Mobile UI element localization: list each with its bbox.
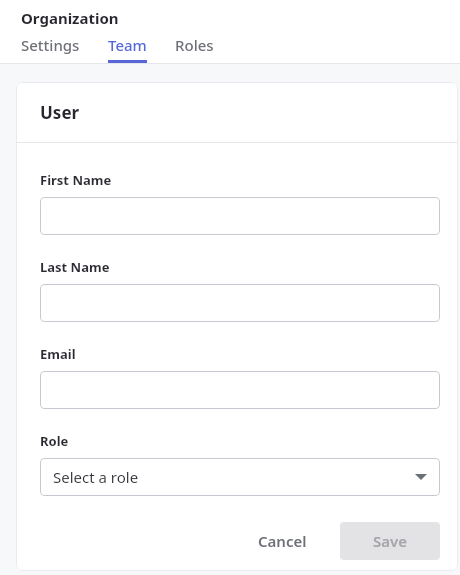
button[interactable]: Settings [21, 35, 80, 63]
button[interactable]: Cancel [250, 523, 315, 559]
button[interactable] [40, 371, 440, 409]
staticText: Save [373, 531, 408, 551]
staticText: Email [40, 345, 76, 363]
staticText: Team [108, 35, 147, 55]
staticText: Settings [21, 35, 80, 55]
staticText: Role [40, 432, 69, 450]
button[interactable]: Roles [175, 35, 214, 63]
staticText: User [40, 101, 80, 124]
button[interactable] [40, 197, 440, 235]
staticText: Select a role [53, 467, 139, 487]
button[interactable]: Select a role [40, 458, 440, 496]
button[interactable]: Team [108, 35, 147, 63]
staticText: Organization [21, 8, 119, 28]
staticText: Last Name [40, 258, 110, 276]
staticText: Cancel [258, 531, 307, 551]
button[interactable] [40, 284, 440, 322]
staticText: First Name [40, 171, 112, 189]
button[interactable]: Save [340, 522, 440, 560]
staticText: Roles [175, 35, 214, 55]
